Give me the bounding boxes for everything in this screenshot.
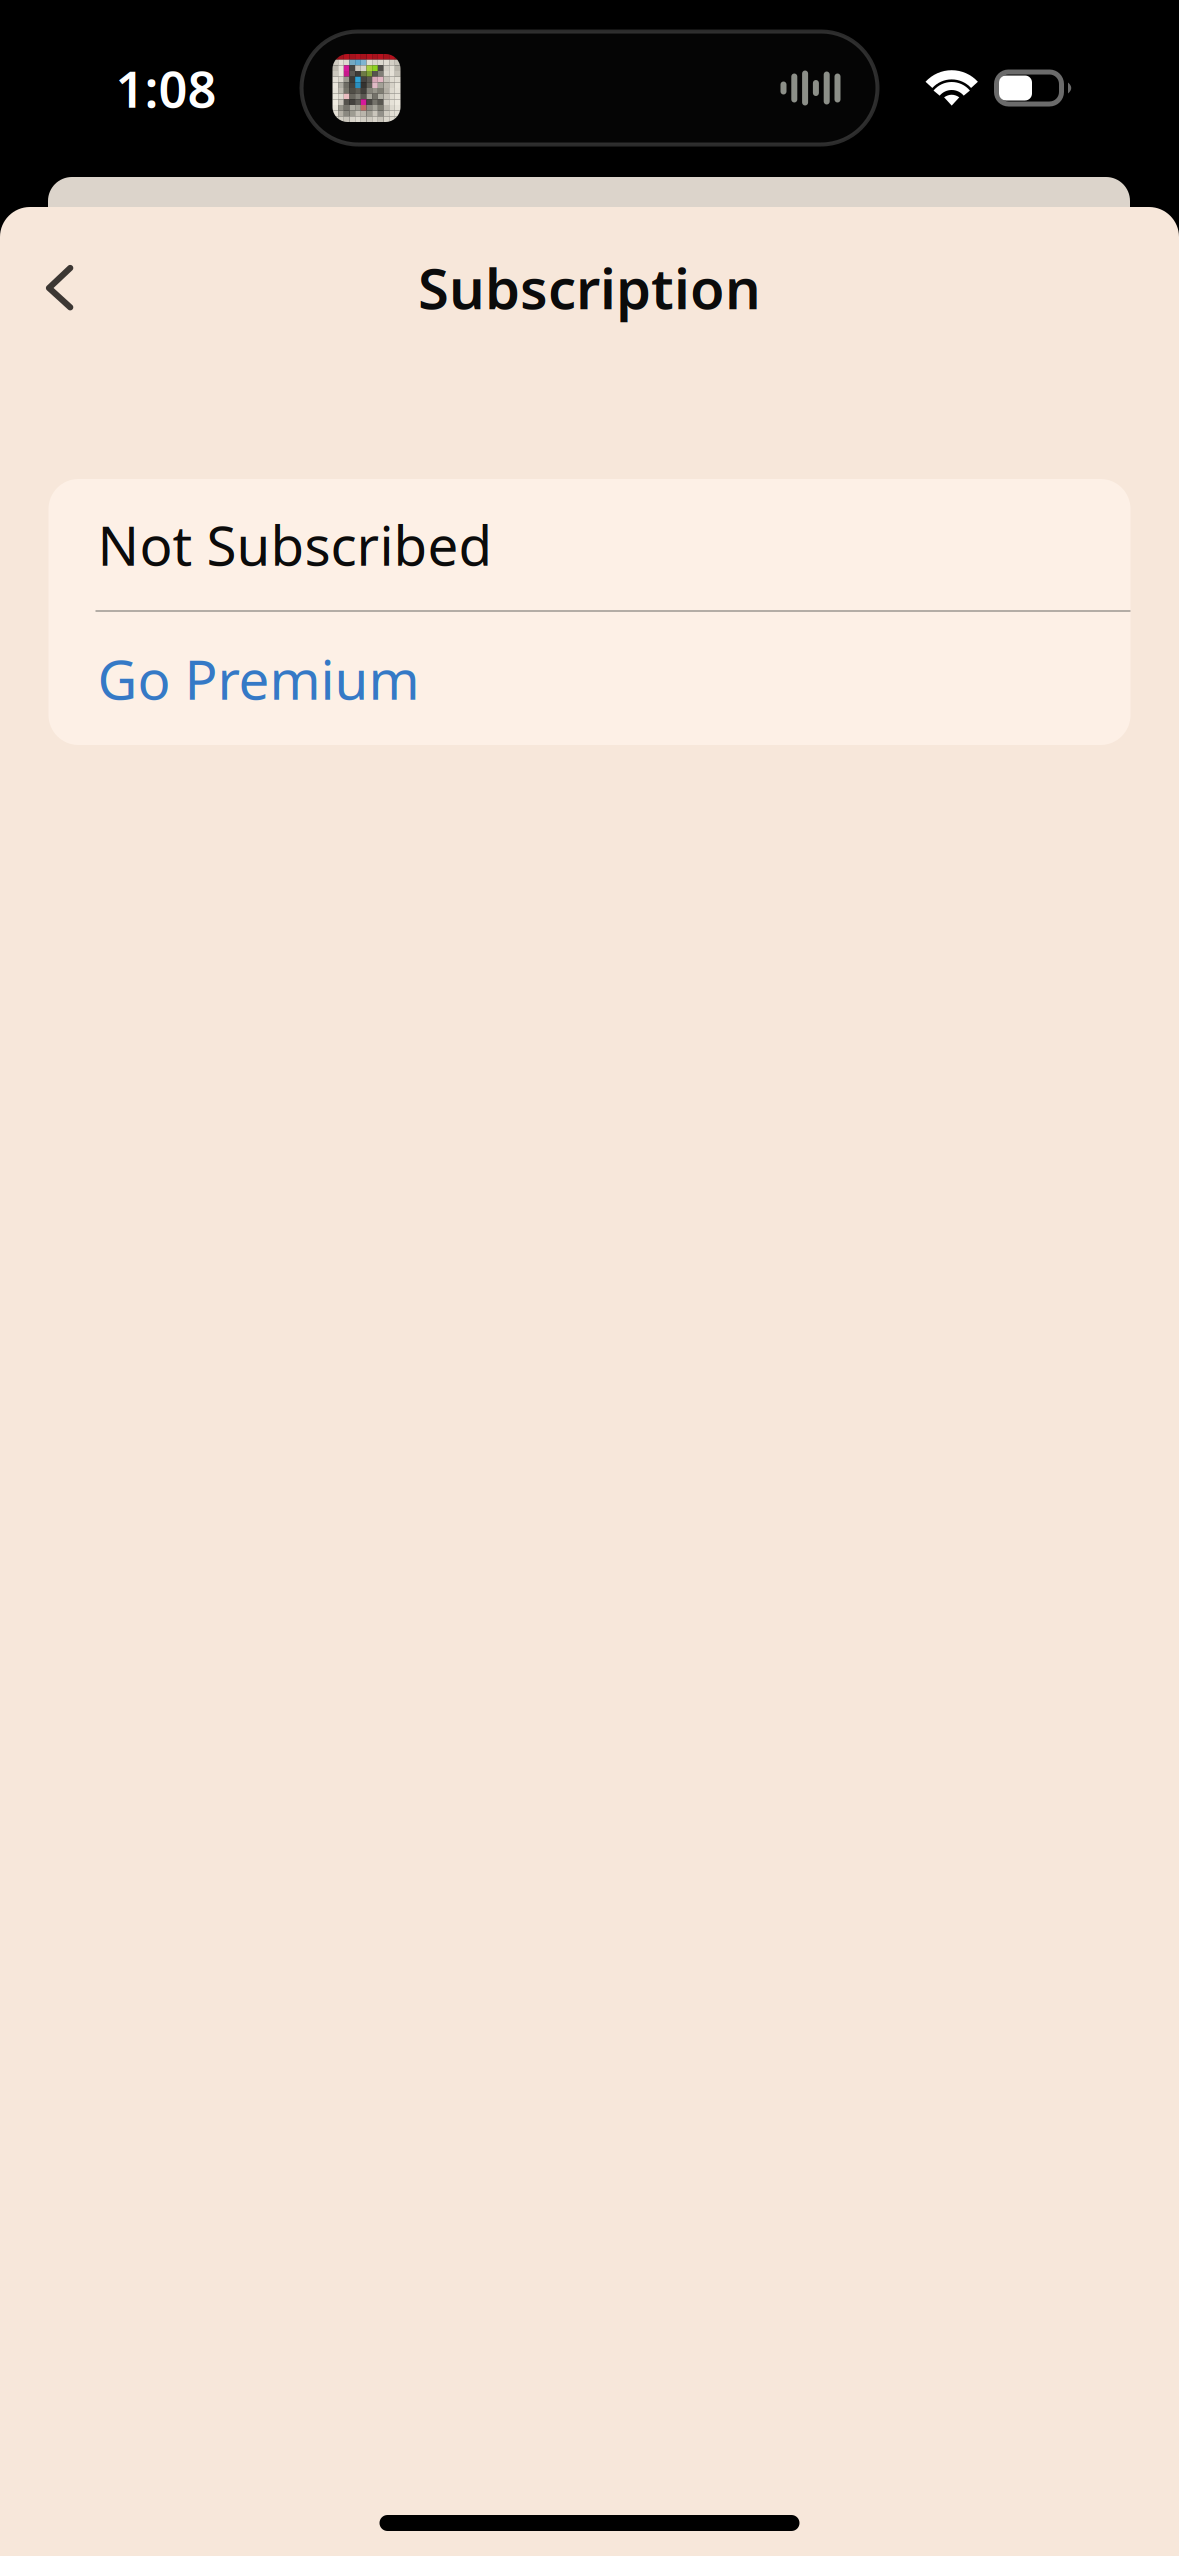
staticText: 1:08	[115, 54, 216, 122]
button[interactable]: Not Subscribed	[48, 479, 1130, 610]
staticText: Not Subscribed	[97, 508, 492, 581]
staticText: Subscription	[418, 250, 761, 325]
button[interactable]: Back	[0, 239, 101, 336]
staticText: Go Premium	[97, 642, 419, 715]
button[interactable]: Go Premium	[48, 612, 1130, 745]
